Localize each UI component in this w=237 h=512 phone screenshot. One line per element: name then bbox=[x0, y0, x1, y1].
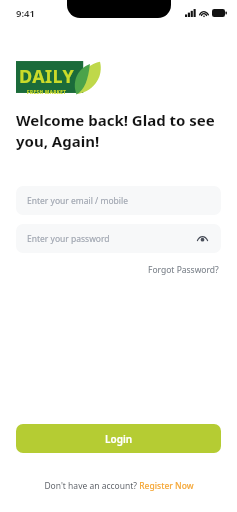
button[interactable]: Show password bbox=[194, 231, 210, 247]
staticText: DAILY bbox=[19, 64, 75, 89]
staticText: 9:41 bbox=[16, 7, 35, 20]
staticText: Welcome back! Glad to see you, Again! bbox=[16, 110, 215, 152]
button[interactable]: Enter your email / mobile bbox=[16, 186, 221, 215]
staticText: Forgot Password? bbox=[148, 264, 219, 276]
button[interactable]: Enter your password bbox=[16, 224, 221, 253]
staticText: Login bbox=[105, 432, 133, 446]
button[interactable]: Forgot Password? bbox=[146, 262, 221, 278]
button[interactable]: Don't have an account? Register Now bbox=[16, 480, 221, 492]
staticText: Enter your email / mobile bbox=[27, 195, 128, 207]
staticText: Don't have an account? Register Now bbox=[44, 480, 194, 492]
button[interactable]: Login bbox=[16, 424, 221, 453]
staticText: Enter your password bbox=[27, 233, 110, 245]
staticText: FRESH MARKET bbox=[27, 89, 67, 95]
